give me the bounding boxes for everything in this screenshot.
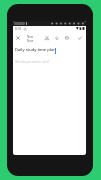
button[interactable]: Done [75, 33, 84, 42]
button[interactable]: Formatting [42, 33, 51, 42]
button[interactable]: Attach [52, 33, 61, 42]
staticText: What do you want to note? [15, 60, 49, 64]
staticText: New [27, 35, 33, 39]
staticText: Daily study time plan [15, 47, 56, 53]
button[interactable]: Close [13, 33, 22, 42]
staticText: Note [27, 39, 34, 43]
button[interactable]: Archive [62, 33, 71, 42]
staticText: 8:35 [15, 27, 22, 31]
